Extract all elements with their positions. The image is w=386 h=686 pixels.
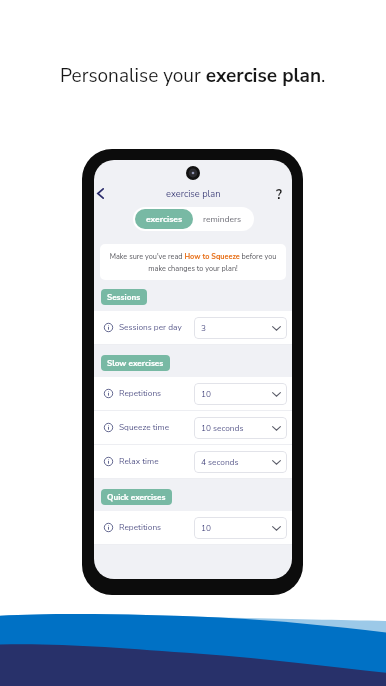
button[interactable]: 10 [201,517,281,539]
staticText: 10 [201,389,211,400]
staticText: Repetitions [119,388,162,399]
staticText: reminders [203,213,242,225]
staticText: Squeeze time [119,422,170,433]
staticText: ? [276,186,282,204]
button[interactable]: Repetitions [104,377,287,410]
button[interactable]: Back [94,184,110,203]
button[interactable]: Squeeze time [104,411,287,444]
button[interactable]: Sessions per day [104,311,287,344]
staticText: Sessions per day [119,322,182,333]
staticText: exercise plan [166,188,221,201]
button[interactable]: reminders [193,209,252,229]
staticText: 10 [201,523,211,534]
button[interactable]: Repetitions [104,511,287,544]
staticText: Slow exercises [107,358,164,369]
staticText: Repetitions [119,522,162,533]
staticText: Make sure you've read How to Squeeze bef… [103,252,283,273]
staticText: Quick exercises [107,492,166,503]
button[interactable]: Relax time [104,445,287,478]
staticText: 10 seconds [201,423,244,434]
staticText: Personalise your exercise plan. [60,63,326,89]
staticText: Relax time [119,456,159,467]
button[interactable]: 4 seconds [201,451,281,473]
staticText: 3 [201,323,206,334]
button[interactable]: 3 [201,317,281,339]
button[interactable]: Help [269,185,288,204]
staticText: Sessions [107,292,141,303]
staticText: 4 seconds [201,457,239,468]
button[interactable]: 10 seconds [201,417,281,439]
staticText: exercises [146,213,183,225]
button[interactable]: exercises [135,209,193,229]
button[interactable]: 10 [201,383,281,405]
